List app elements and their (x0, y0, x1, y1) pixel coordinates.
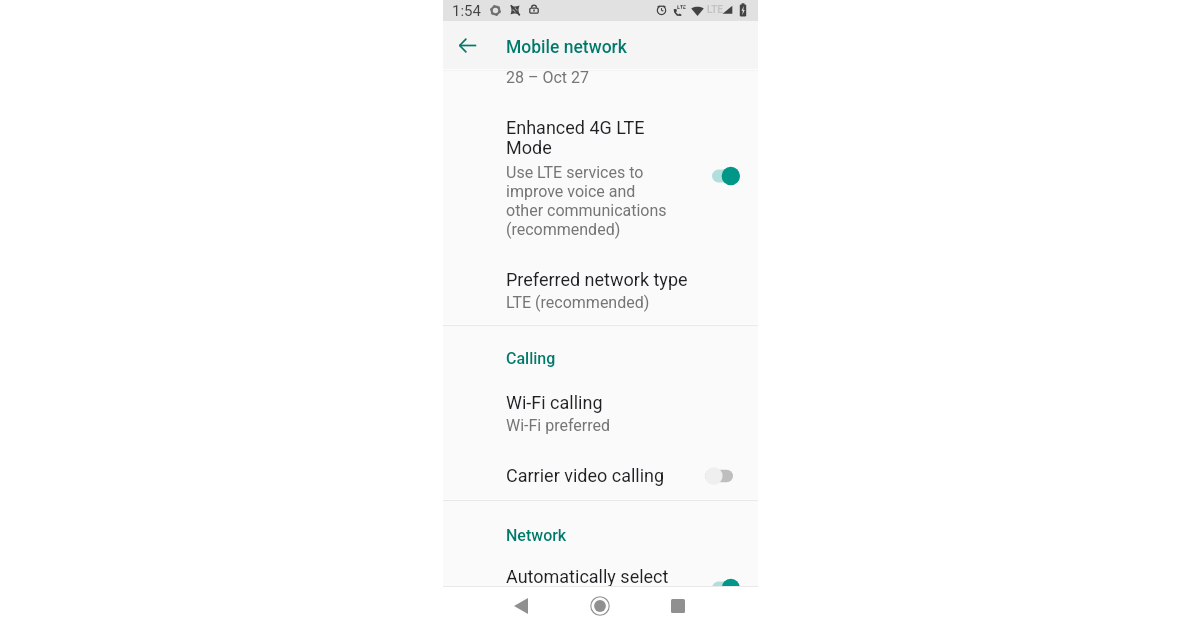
staticText: Network (506, 526, 567, 545)
button[interactable] (443, 455, 758, 499)
staticText: 1:54 (452, 2, 481, 20)
staticText: Wi-Fi calling (506, 392, 603, 413)
staticText: LTE (recommended) (506, 293, 650, 312)
staticText: Calling (506, 349, 556, 368)
button[interactable] (443, 556, 758, 587)
button[interactable] (443, 258, 758, 318)
staticText: LTE (707, 4, 723, 16)
staticText: Preferred network type (506, 269, 688, 290)
button[interactable] (443, 381, 758, 441)
staticText: 28 – Oct 27 (506, 68, 589, 87)
button[interactable] (443, 110, 758, 240)
staticText: Enhanced 4G LTE Mode (506, 118, 645, 158)
staticText: Carrier video calling (506, 465, 665, 486)
staticText: Use LTE services to improve voice and ot… (506, 163, 667, 239)
button[interactable]: Back (499, 585, 543, 626)
staticText: Automatically select (506, 566, 669, 587)
button[interactable]: Home (578, 585, 622, 626)
button[interactable]: Back (451, 29, 483, 61)
staticText: Mobile network (506, 37, 627, 58)
staticText: Wi-Fi preferred (506, 416, 611, 435)
button[interactable]: Recent apps (656, 585, 700, 626)
